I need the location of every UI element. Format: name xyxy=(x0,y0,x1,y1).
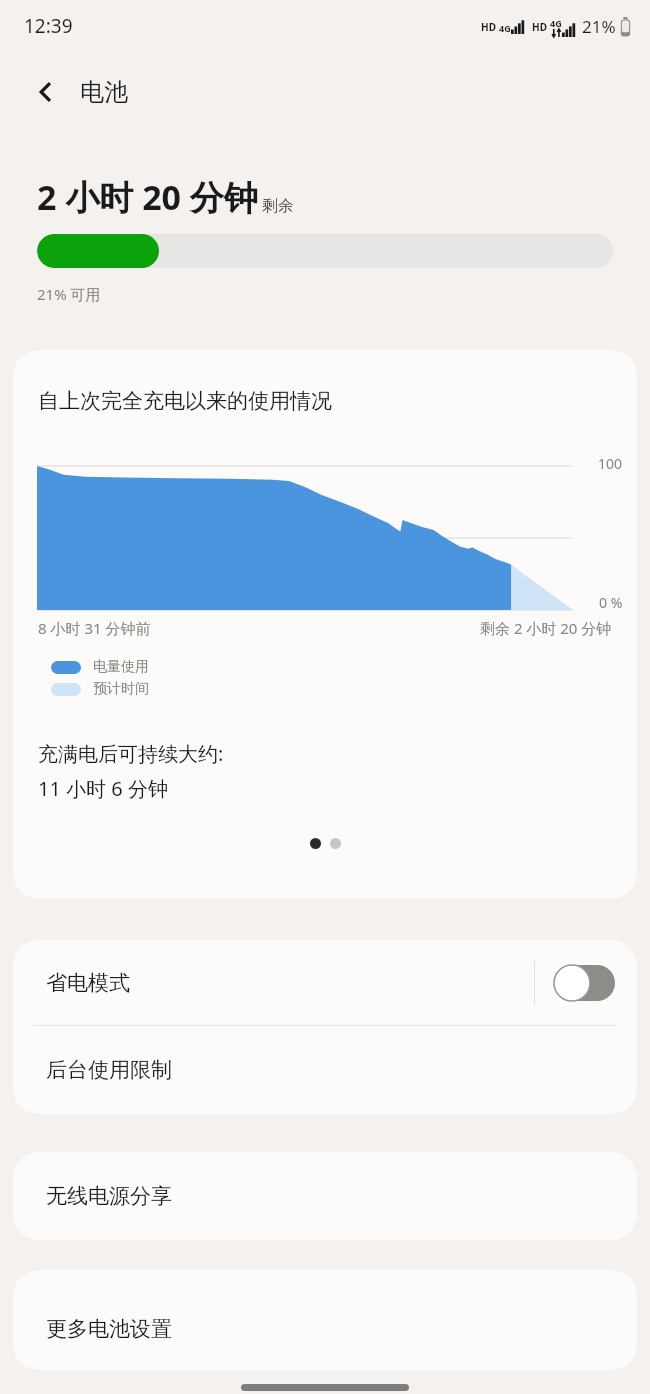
button[interactable]: 后台使用限制 xyxy=(13,1026,637,1114)
staticText: 自上次完全充电以来的使用情况 xyxy=(38,388,332,414)
staticText: 无线电源分享 xyxy=(46,1183,172,1209)
staticText: 电池 xyxy=(80,77,128,107)
staticText: 4G xyxy=(550,17,562,29)
button[interactable]: Back xyxy=(22,68,70,116)
staticText: 4G xyxy=(499,22,511,34)
button[interactable]: 无线电源分享 xyxy=(13,1152,637,1240)
button[interactable]: 省电模式 xyxy=(13,940,637,1025)
staticText: 电量使用 xyxy=(93,658,149,676)
staticText: 更多电池设置 xyxy=(46,1316,172,1342)
staticText: 省电模式 xyxy=(46,970,130,996)
staticText: 11 小时 6 分钟 xyxy=(38,775,168,802)
button[interactable]: 省电模式 开关 xyxy=(553,965,615,1001)
staticText: HD xyxy=(532,20,547,34)
staticText: 0 % xyxy=(599,593,623,612)
staticText: 2 小时 20 分钟 xyxy=(37,174,258,220)
staticText: 21% 可用 xyxy=(37,284,101,304)
button[interactable]: 自上次完全充电以来的使用情况 xyxy=(13,350,637,899)
staticText: 12:39 xyxy=(24,13,73,39)
staticText: 100 xyxy=(598,454,623,473)
staticText: 8 小时 31 分钟前 xyxy=(38,618,151,638)
button[interactable]: 更多电池设置 xyxy=(13,1270,637,1370)
staticText: 预计时间 xyxy=(93,680,149,698)
staticText: 充满电后可持续大约: xyxy=(38,740,224,767)
staticText: 21% xyxy=(582,15,616,38)
staticText: HD xyxy=(481,20,496,34)
staticText: 剩余 xyxy=(262,196,294,216)
staticText: 后台使用限制 xyxy=(46,1057,172,1083)
staticText: 剩余 2 小时 20 分钟 xyxy=(480,618,612,638)
